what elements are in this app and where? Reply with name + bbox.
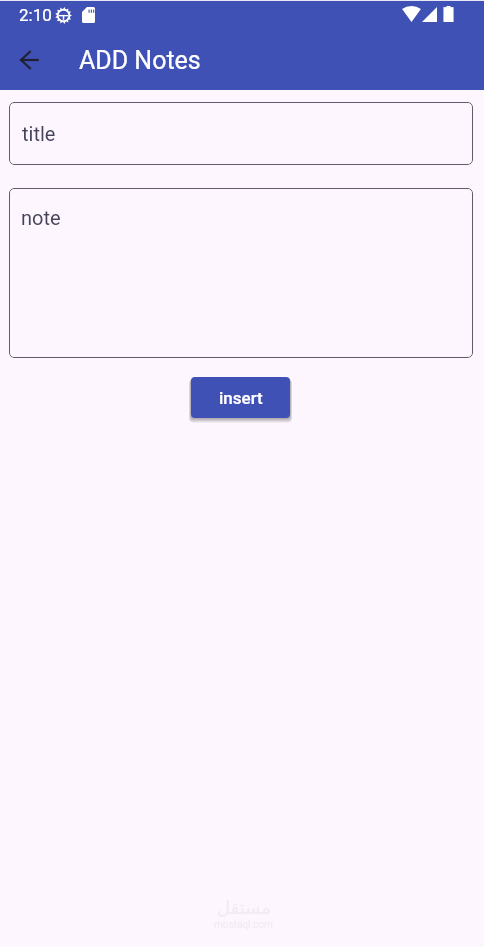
staticText: مستقل [217,897,271,918]
button[interactable]: note [9,188,473,358]
staticText: ADD Notes [79,46,201,75]
button[interactable]: title [9,102,473,165]
staticText: title [22,122,56,145]
staticText: 2:10 [19,5,52,25]
button[interactable]: Back [10,42,48,80]
button[interactable]: insert [191,377,290,418]
staticText: mostaql.com [214,919,273,931]
staticText: insert [219,388,263,408]
staticText: note [21,206,61,229]
